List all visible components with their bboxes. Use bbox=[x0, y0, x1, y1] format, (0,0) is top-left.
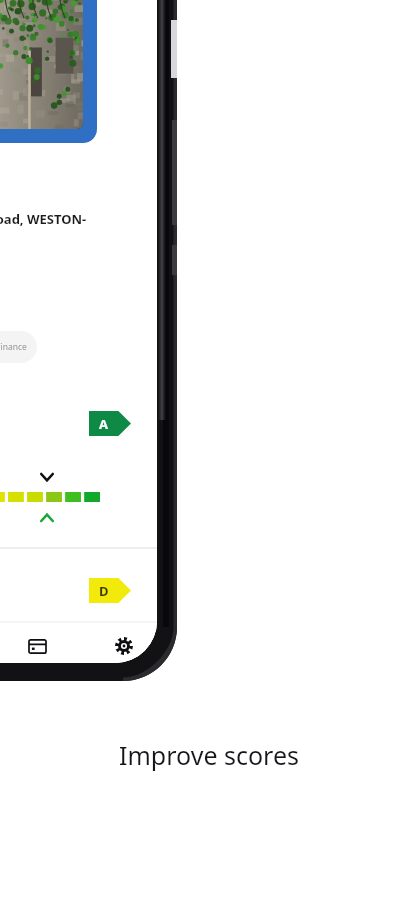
button[interactable] bbox=[0, 0, 97, 143]
button[interactable]: A bbox=[89, 411, 131, 436]
button[interactable]: 12 Hill Road, WESTON- bbox=[0, 210, 87, 228]
staticText: 12 Hill Road, WESTON- bbox=[0, 210, 87, 228]
button[interactable]: D bbox=[89, 578, 131, 603]
staticText: A bbox=[99, 415, 108, 433]
staticText: Improve scores bbox=[119, 738, 299, 772]
staticText: Finance bbox=[0, 341, 27, 353]
button[interactable]: Wallet bbox=[22, 631, 52, 661]
button[interactable]: Improve scores bbox=[0, 728, 417, 782]
button[interactable]: Settings bbox=[109, 631, 139, 661]
staticText: D bbox=[99, 582, 109, 600]
button[interactable]: Finance bbox=[0, 331, 37, 363]
